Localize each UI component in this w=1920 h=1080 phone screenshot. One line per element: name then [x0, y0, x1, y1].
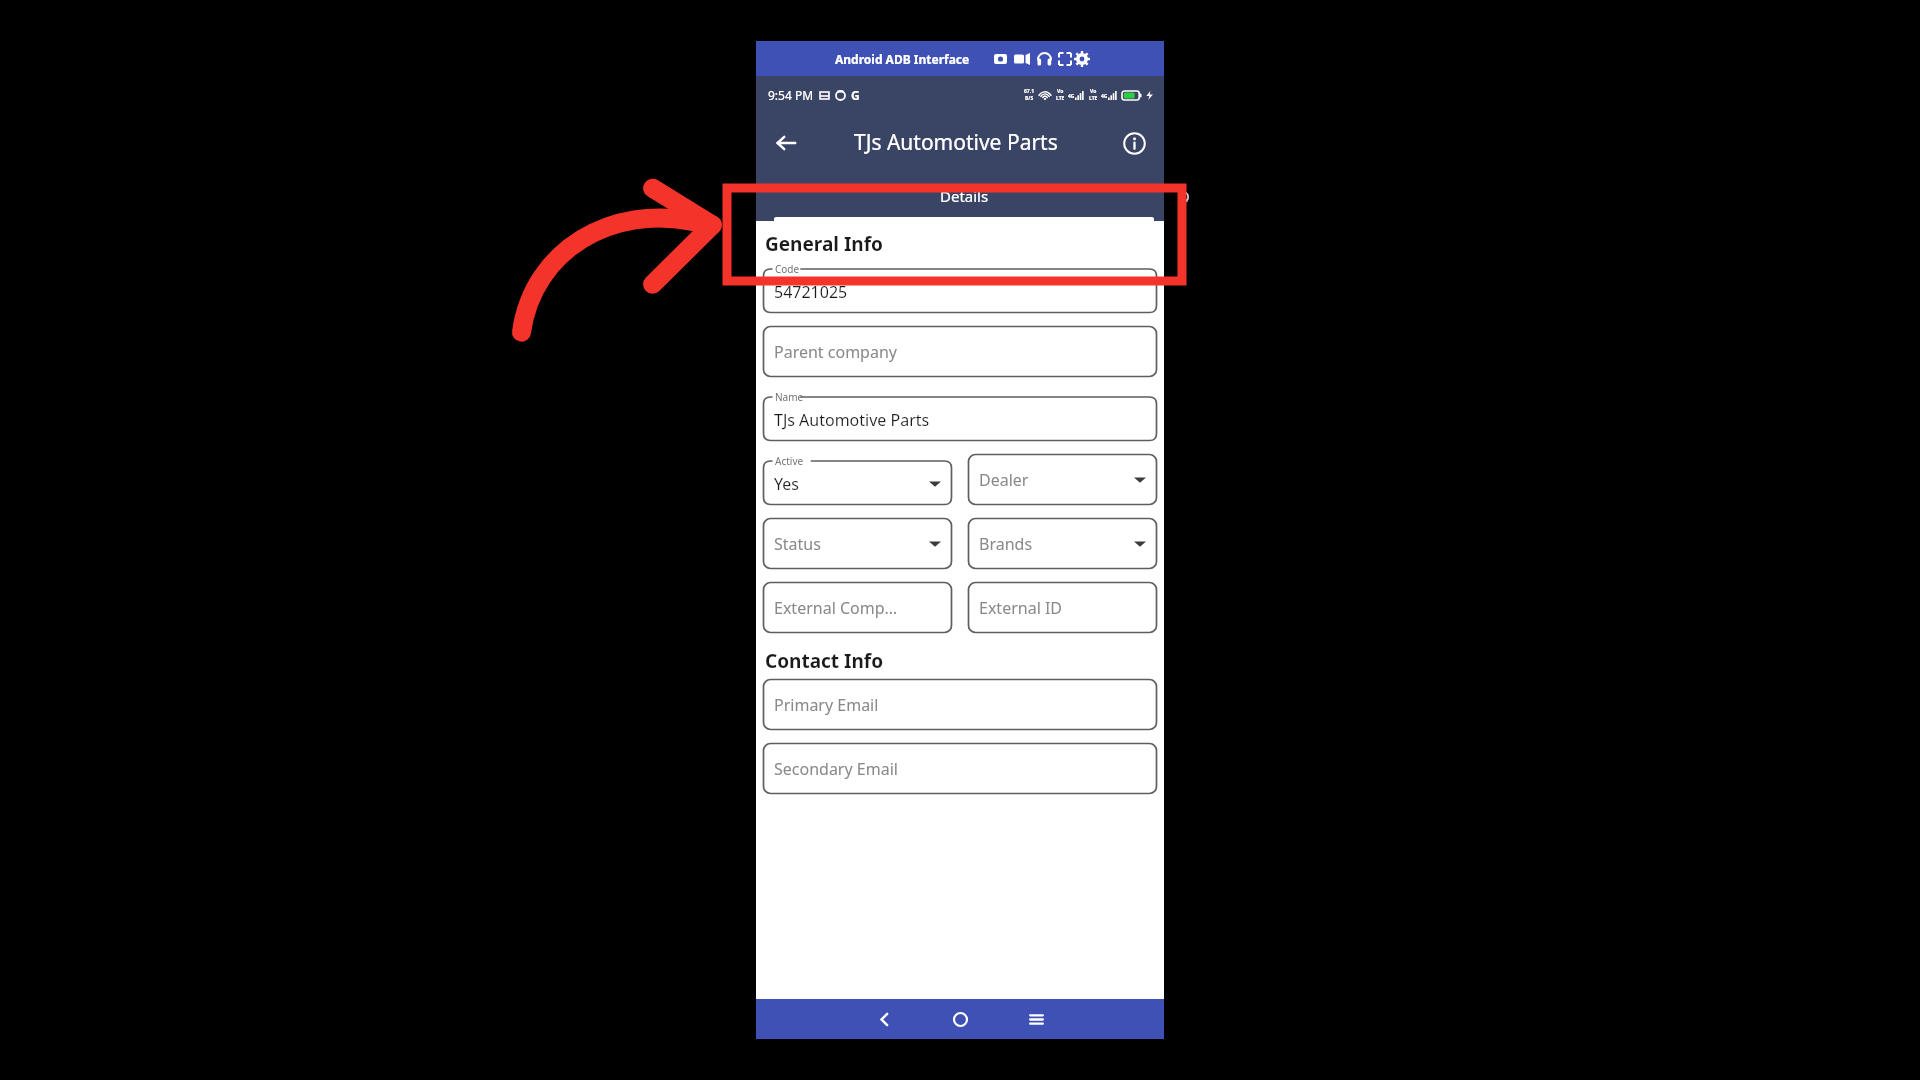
staticText: TJs Automotive Parts	[774, 409, 930, 431]
staticText: 67.1	[1024, 88, 1034, 95]
button[interactable]: Status	[762, 517, 953, 570]
staticText: Name	[775, 390, 804, 404]
staticText: Vo	[1090, 88, 1097, 95]
staticText: LTE	[1089, 95, 1098, 102]
staticText: Status	[774, 533, 821, 555]
other: Toolbar actions	[990, 51, 1086, 67]
staticText: Vo	[1057, 88, 1064, 95]
staticText: 4G	[1101, 93, 1108, 100]
button[interactable]: External Comp…	[762, 581, 953, 634]
staticText: Parent company	[774, 341, 897, 363]
button[interactable]: Secondary Email	[762, 742, 1158, 795]
staticText: 9:54 PM	[768, 87, 814, 103]
staticText: Brands	[979, 533, 1033, 555]
staticText: 4G	[1068, 93, 1075, 100]
button[interactable]: Primary Email	[762, 678, 1158, 731]
staticText: B/S	[1025, 95, 1034, 102]
staticText: External ID	[979, 597, 1063, 619]
button[interactable]: Home	[936, 999, 984, 1039]
staticText: Primary Email	[774, 694, 879, 716]
staticText: Contact Info	[765, 648, 884, 674]
staticText: 54721025	[774, 281, 848, 303]
button[interactable]: Name	[762, 389, 1158, 442]
staticText: External Comp…	[774, 597, 898, 619]
button[interactable]: Active	[762, 453, 953, 506]
staticText: LTE	[1056, 95, 1065, 102]
staticText: Dealer	[979, 469, 1029, 491]
button[interactable]: Dealer	[967, 453, 1158, 506]
button[interactable]: External ID	[967, 581, 1158, 634]
staticText: Active	[775, 454, 804, 468]
button[interactable]: Recent apps	[1012, 999, 1060, 1039]
staticText: G	[851, 87, 860, 103]
staticText: Code	[775, 262, 800, 276]
button[interactable]: Code	[762, 261, 1158, 314]
button[interactable]: Info	[1112, 121, 1156, 165]
staticText: Details	[940, 186, 989, 206]
staticText: General Info	[765, 231, 883, 257]
staticText: TJs Automotive Parts	[854, 128, 1058, 157]
staticText: Secondary Email	[774, 758, 898, 780]
button[interactable]: Back	[860, 999, 908, 1039]
button[interactable]: Details	[764, 171, 1164, 221]
staticText: Yes	[774, 473, 799, 495]
button[interactable]: Parent company	[762, 325, 1158, 378]
button[interactable]: Brands	[967, 517, 1158, 570]
staticText: Android ADB Interface	[835, 51, 970, 67]
button[interactable]: Back	[764, 121, 808, 165]
